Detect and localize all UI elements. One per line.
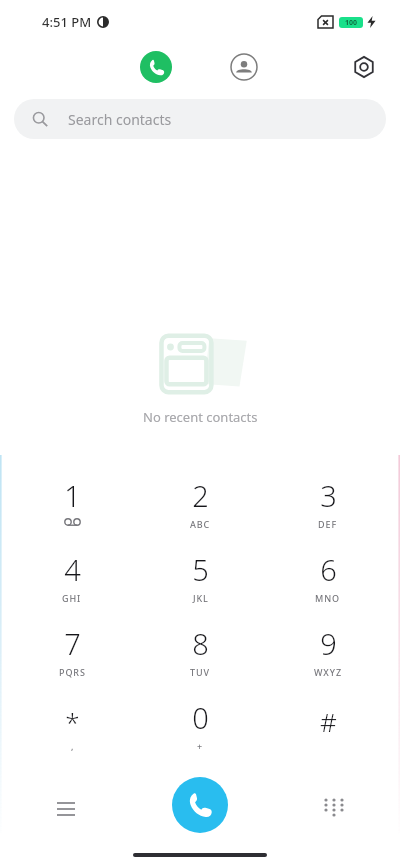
button[interactable]: Menu <box>46 789 86 829</box>
staticText: JKL <box>193 592 209 604</box>
staticText: PQRS <box>59 666 86 678</box>
staticText: 7 <box>64 624 81 663</box>
staticText: + <box>197 740 204 752</box>
button[interactable]: Recents <box>140 51 172 83</box>
staticText: DEF <box>318 518 338 530</box>
staticText: 4:51 PM <box>42 13 92 31</box>
staticText: , <box>71 740 75 752</box>
staticText: 1 <box>64 476 81 515</box>
staticText: * <box>65 704 80 739</box>
button[interactable]: * <box>16 693 128 767</box>
button[interactable]: 9 <box>272 619 384 693</box>
staticText: 3 <box>320 476 337 515</box>
staticText: 5 <box>192 550 209 589</box>
button[interactable]: 5 <box>144 545 256 619</box>
button[interactable]: Settings <box>348 51 380 83</box>
staticText: WXYZ <box>314 666 342 678</box>
button[interactable]: 0 <box>144 693 256 767</box>
staticText: No recent contacts <box>143 408 258 426</box>
staticText: GHI <box>62 592 82 604</box>
button[interactable]: 2 <box>144 471 256 545</box>
staticText: 4 <box>64 550 81 589</box>
button[interactable]: 7 <box>16 619 128 693</box>
staticText: 9 <box>320 624 337 663</box>
button[interactable]: Dialpad <box>314 789 354 829</box>
staticText: 100 <box>345 18 358 28</box>
button[interactable]: 3 <box>272 471 384 545</box>
button[interactable]: 4 <box>16 545 128 619</box>
staticText: 2 <box>192 476 209 515</box>
staticText: ABC <box>190 518 211 530</box>
button[interactable]: Search contacts <box>14 99 386 139</box>
staticText: 0 <box>192 698 209 737</box>
button[interactable]: Contacts <box>228 51 260 83</box>
button[interactable]: # <box>272 693 384 767</box>
staticText: 8 <box>192 624 209 663</box>
staticText: # <box>320 704 337 739</box>
button[interactable]: 1 <box>16 471 128 545</box>
button[interactable]: 8 <box>144 619 256 693</box>
staticText: Search contacts <box>68 110 172 129</box>
staticText: MNO <box>315 592 341 604</box>
button[interactable]: 6 <box>272 545 384 619</box>
button[interactable]: Call <box>172 777 228 833</box>
staticText: TUV <box>190 666 210 678</box>
staticText: 6 <box>320 550 337 589</box>
